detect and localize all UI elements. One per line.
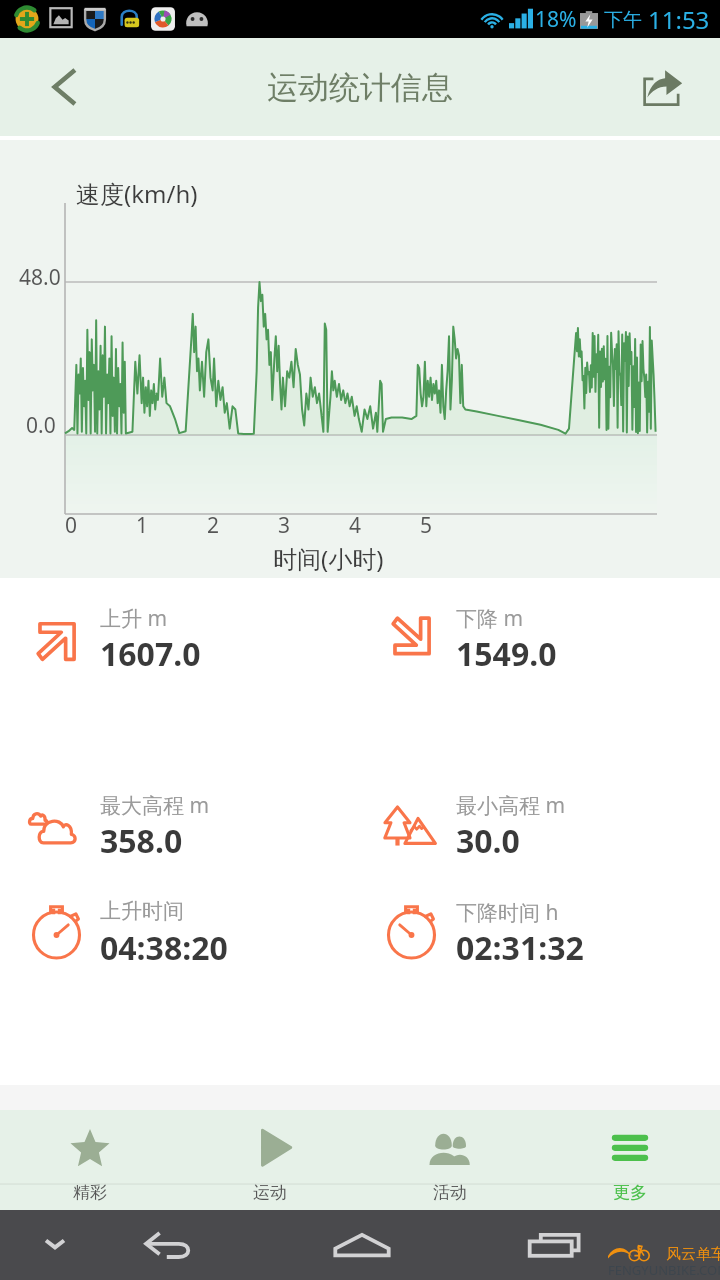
staticText: 02:31:32 [456, 926, 584, 970]
button[interactable]: Navigation [328, 1215, 396, 1275]
staticText: 精彩 [73, 1182, 107, 1203]
button[interactable]: 运动 [180, 1110, 360, 1210]
staticText: 最大高程 m [100, 791, 210, 820]
button[interactable]: Navigation [21, 1215, 89, 1275]
button[interactable]: Navigation [520, 1215, 588, 1275]
button[interactable]: 最小高程 m [381, 787, 701, 863]
button[interactable]: 最大高程 m [26, 787, 346, 863]
staticText: 1 [136, 511, 149, 540]
staticText: 358.0 [100, 819, 183, 863]
staticText: 最小高程 m [456, 791, 566, 820]
staticText: 4 [349, 511, 362, 540]
staticText: 0.0 [26, 411, 56, 440]
staticText: 0 [65, 511, 78, 540]
staticText: 运动统计信息 [267, 68, 453, 107]
staticText: 18% [535, 5, 577, 34]
staticText: 11:53 [648, 3, 710, 36]
button[interactable]: Share [624, 38, 720, 136]
staticText: 下降时间 h [456, 898, 559, 927]
staticText: 上升 m [100, 604, 168, 633]
staticText: 48.0 [19, 263, 61, 292]
button[interactable]: 上升 m [26, 600, 346, 676]
staticText: 30.0 [456, 819, 520, 863]
button[interactable]: 活动 [360, 1110, 540, 1210]
button[interactable]: Navigation [134, 1215, 202, 1275]
staticText: 04:38:20 [100, 926, 228, 970]
staticText: 上升时间 [100, 898, 184, 924]
staticText: 2 [207, 511, 220, 540]
staticText: 运动 [253, 1182, 287, 1203]
button[interactable]: 下降 m [381, 600, 701, 676]
staticText: 活动 [433, 1182, 467, 1203]
button[interactable]: 更多 [540, 1110, 720, 1210]
staticText: 1607.0 [100, 632, 201, 676]
staticText: 1549.0 [456, 632, 557, 676]
staticText: 更多 [613, 1182, 647, 1203]
staticText: 下午 [604, 8, 642, 32]
staticText: 速度(km/h) [76, 177, 198, 210]
button[interactable]: 精彩 [0, 1110, 180, 1210]
staticText: 下降 m [456, 604, 524, 633]
staticText: FENGYUNBIKE.COM [608, 1261, 720, 1279]
button[interactable]: 上升时间 [26, 894, 346, 970]
staticText: 5 [420, 511, 433, 540]
button[interactable]: Back [20, 38, 110, 136]
staticText: 3 [278, 511, 291, 540]
staticText: 风云单车 [666, 1245, 720, 1264]
staticText: 时间(小时) [273, 542, 384, 575]
button[interactable]: 下降时间 h [381, 894, 701, 970]
